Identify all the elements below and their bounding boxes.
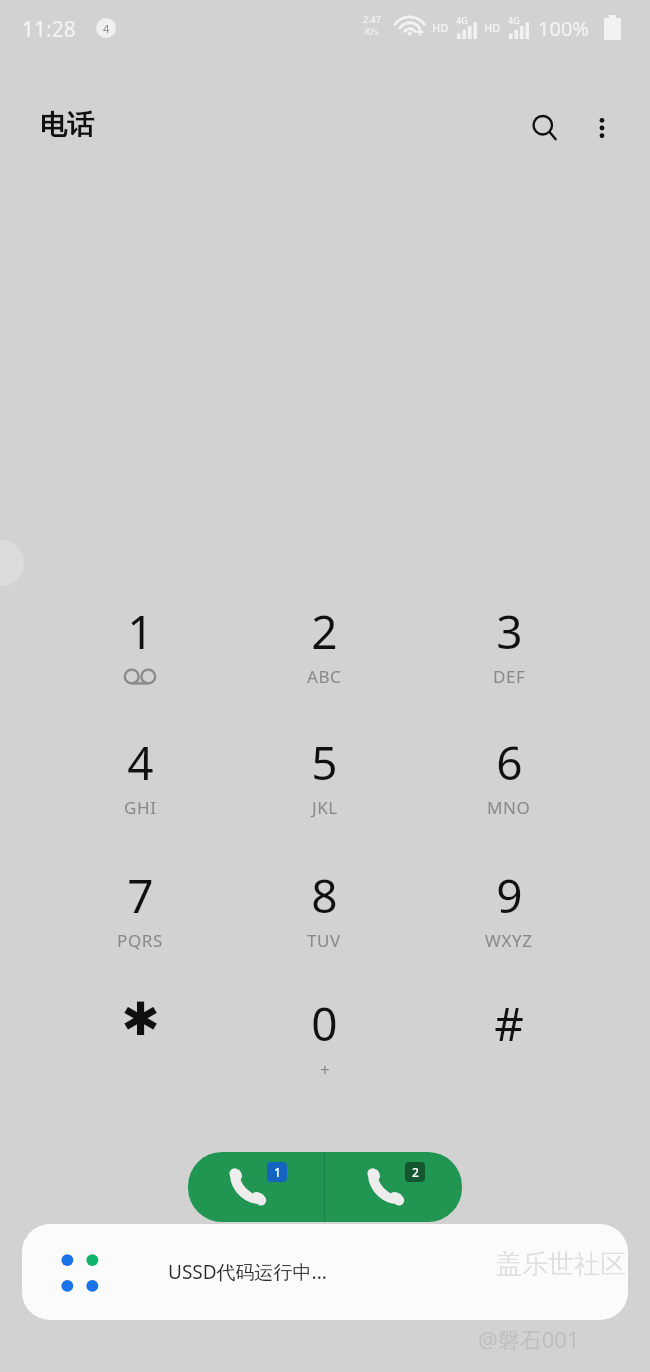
staticText: ✱ <box>121 992 160 1046</box>
staticText: HD <box>432 20 449 35</box>
staticText: ABC <box>307 665 342 688</box>
button[interactable]: 4 <box>65 731 215 855</box>
button[interactable]: 5 <box>249 731 399 855</box>
staticText: 4 <box>127 731 154 794</box>
staticText: 7 <box>127 864 154 927</box>
staticText: # <box>494 992 524 1055</box>
staticText: PQRS <box>117 929 163 952</box>
button[interactable]: 7 <box>65 864 215 988</box>
staticText: 11:28 <box>22 15 76 44</box>
button[interactable]: 9 <box>434 864 584 988</box>
staticText: HD <box>484 20 501 35</box>
staticText: 盖乐世社区 <box>496 1248 626 1281</box>
staticText: MNO <box>487 796 531 819</box>
button[interactable]: 2 <box>249 600 399 724</box>
button[interactable]: 6 <box>434 731 584 855</box>
button[interactable]: Call with SIM 2 <box>325 1152 462 1222</box>
staticText: + <box>320 1058 330 1081</box>
staticText: USSD代码运行中... <box>168 1259 327 1285</box>
staticText: 4 <box>103 21 110 36</box>
staticText: 0 <box>311 992 338 1055</box>
button[interactable]: # <box>434 992 584 1116</box>
staticText: 100% <box>538 15 589 42</box>
staticText: 2.47 <box>363 13 381 25</box>
staticText: 9 <box>496 864 523 927</box>
staticText: 电话 <box>40 108 94 142</box>
staticText: 5 <box>311 731 338 794</box>
button[interactable]: Call with SIM 1 <box>188 1152 324 1222</box>
staticText: K/s <box>365 25 379 37</box>
staticText: 4G <box>508 14 520 26</box>
button[interactable]: More options <box>575 101 629 155</box>
button[interactable]: 8 <box>249 864 399 988</box>
staticText: DEF <box>493 665 526 688</box>
button[interactable]: Search <box>518 101 572 155</box>
button[interactable]: ✱ <box>65 992 215 1116</box>
staticText: 6 <box>496 731 523 794</box>
staticText: 3 <box>496 600 523 663</box>
button[interactable]: 3 <box>434 600 584 724</box>
button[interactable]: 1 <box>65 600 215 724</box>
staticText: WXYZ <box>485 929 533 952</box>
button[interactable]: 0 <box>249 992 399 1116</box>
staticText: TUV <box>307 929 341 952</box>
staticText: @磐石001 <box>478 1324 580 1354</box>
staticText: 2 <box>412 1164 419 1180</box>
staticText: 2 <box>311 600 338 663</box>
staticText: 1 <box>274 1164 281 1180</box>
staticText: JKL <box>312 796 338 819</box>
staticText: 4G <box>456 14 468 26</box>
staticText: 8 <box>311 864 338 927</box>
staticText: 1 <box>127 600 154 663</box>
staticText: GHI <box>124 796 157 819</box>
